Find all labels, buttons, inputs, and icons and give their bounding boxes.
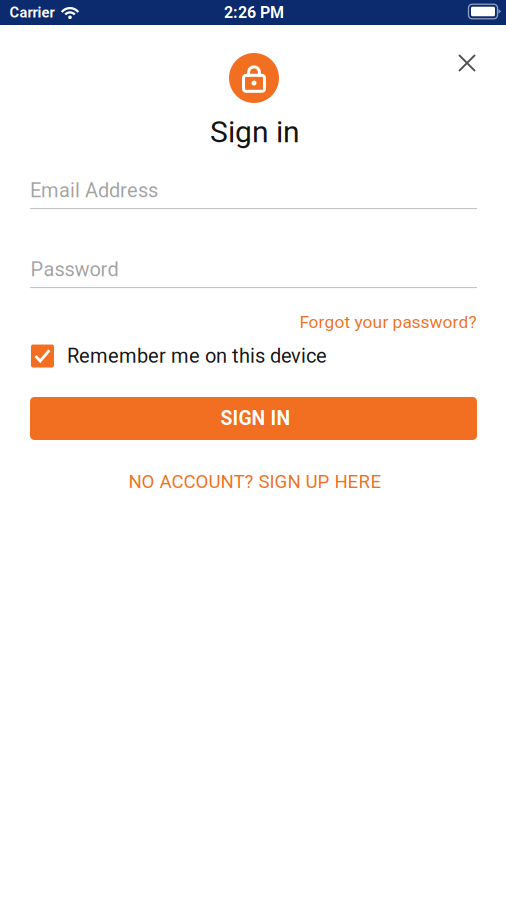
staticText: Password: [30, 258, 118, 281]
button[interactable]: SIGN IN: [30, 397, 477, 440]
staticText: Forgot your password?: [299, 312, 476, 332]
button[interactable]: Close: [445, 41, 489, 85]
button[interactable]: Forgot your password?: [299, 307, 476, 336]
staticText: 2:26 PM: [224, 3, 284, 22]
button[interactable]: Email Address: [30, 179, 477, 212]
button[interactable]: NO ACCOUNT? SIGN UP HERE: [114, 465, 395, 498]
staticText: Carrier: [9, 4, 54, 21]
button[interactable]: Password: [30, 258, 477, 291]
staticText: SIGN IN: [220, 407, 290, 430]
staticText: NO ACCOUNT? SIGN UP HERE: [128, 471, 381, 492]
staticText: Remember me on this device: [67, 344, 327, 368]
staticText: Sign in: [210, 114, 300, 150]
staticText: Email Address: [30, 179, 158, 202]
button[interactable]: Remember me on this device: [31, 342, 341, 369]
